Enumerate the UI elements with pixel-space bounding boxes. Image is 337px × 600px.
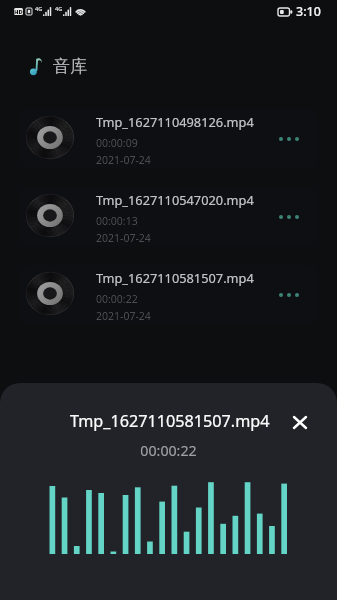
staticText: 00:00:22 (0, 441, 337, 460)
button[interactable]: Tmp_1627110547020.mp4 (19, 187, 318, 246)
staticText: 音库 (53, 56, 87, 77)
staticText: Tmp_1627110547020.mp4 (96, 191, 254, 208)
button[interactable]: More options (269, 265, 309, 324)
staticText: 4G (35, 5, 43, 12)
staticText: 4G (55, 5, 63, 12)
staticText: 2021-07-24 (96, 231, 151, 245)
button[interactable]: Tmp_1627110498126.mp4 (19, 109, 318, 168)
button[interactable]: More options (269, 109, 309, 168)
staticText: 00:00:13 (96, 214, 138, 228)
staticText: 2021-07-24 (96, 309, 151, 323)
button[interactable]: More options (269, 187, 309, 246)
button[interactable]: Tmp_1627110581507.mp4 (19, 265, 318, 324)
staticText: 2021-07-24 (96, 153, 151, 167)
staticText: 3:10 (296, 3, 321, 20)
staticText: Tmp_1627110498126.mp4 (96, 113, 254, 130)
button[interactable]: Close (288, 410, 312, 434)
staticText: 00:00:22 (96, 292, 138, 306)
staticText: 00:00:09 (96, 136, 138, 150)
staticText: Tmp_1627110581507.mp4 (96, 269, 254, 286)
staticText: Tmp_1627110581507.mp4 (70, 410, 270, 432)
staticText: HD (14, 8, 23, 15)
